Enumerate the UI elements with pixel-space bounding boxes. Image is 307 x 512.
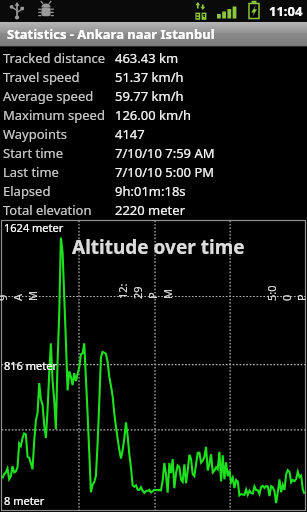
staticText: 1624 meter (4, 220, 64, 235)
staticText: Maximum speed (3, 106, 115, 124)
staticText: 126.00 km/h (115, 106, 192, 124)
button[interactable]: Total elevation (0, 200, 307, 219)
staticText: 7/10/10 7:59 AM (115, 144, 215, 162)
staticText: Average speed (3, 87, 115, 105)
staticText: 7/10/10 5:00 PM (115, 163, 215, 181)
staticText: 2220 meter (115, 201, 186, 219)
staticText: Tracked distance (3, 49, 115, 67)
button[interactable]: Last time (0, 162, 307, 181)
staticText: 5:00 PM (264, 285, 307, 301)
staticText: Waypoints (3, 125, 115, 143)
button[interactable]: Statistics - Ankara naar Istanbul (0, 22, 307, 46)
button[interactable]: Start time (0, 143, 307, 162)
button[interactable]: Altitude over time chart (0, 219, 307, 512)
staticText: 59.77 km/h (115, 87, 184, 105)
staticText: Travel speed (3, 68, 115, 86)
staticText: Start time (3, 144, 115, 162)
staticText: Elapsed (3, 182, 115, 200)
button[interactable]: Maximum speed (0, 105, 307, 124)
staticText: 8 meter (4, 493, 45, 508)
staticText: 51.37 km/h (115, 68, 184, 86)
staticText: Altitude over time (72, 234, 245, 260)
button[interactable]: Elapsed (0, 181, 307, 200)
button[interactable]: Waypoints (0, 124, 307, 143)
staticText: Statistics - Ankara naar Istanbul (7, 25, 215, 43)
staticText: 463.43 km (115, 49, 179, 67)
staticText: Total elevation (3, 201, 115, 219)
button[interactable]: Travel speed (0, 67, 307, 86)
staticText: 12:29 PM (115, 283, 175, 299)
button[interactable]: Average speed (0, 86, 307, 105)
staticText: Last time (3, 163, 115, 181)
staticText: 11:04 (269, 2, 303, 20)
button[interactable]: Tracked distance (0, 48, 307, 67)
staticText: 4147 (115, 125, 145, 143)
staticText: 7:59 AM (0, 285, 40, 301)
staticText: 9h:01m:18s (115, 182, 186, 200)
staticText: 816 meter (4, 358, 57, 373)
